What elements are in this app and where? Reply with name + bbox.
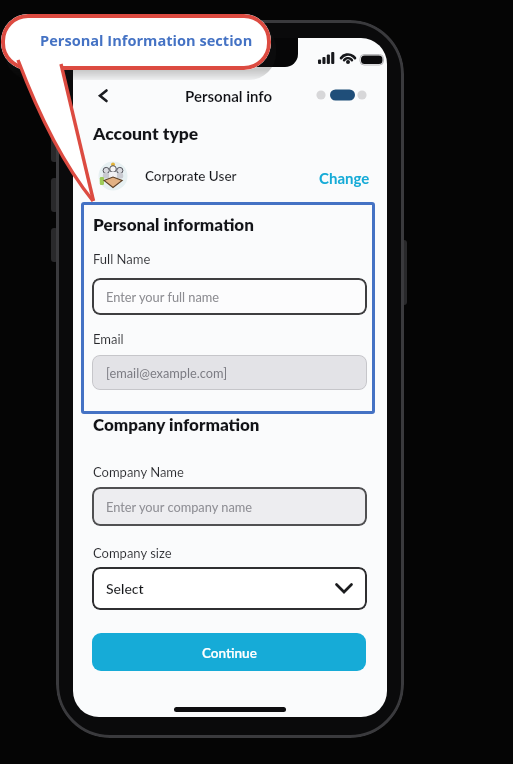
staticText: Email bbox=[93, 331, 124, 347]
staticText: Corporate User bbox=[145, 168, 237, 184]
staticText: Change bbox=[319, 169, 370, 187]
button[interactable]: [email@example.com] bbox=[92, 355, 367, 390]
staticText: [email@example.com] bbox=[106, 365, 228, 380]
staticText: Account type bbox=[93, 123, 199, 144]
button[interactable]: Enter your company name bbox=[92, 487, 367, 526]
button[interactable] bbox=[89, 81, 119, 111]
staticText: Company information bbox=[93, 414, 260, 434]
staticText: Enter your company name bbox=[106, 499, 253, 514]
staticText: Company Name bbox=[93, 464, 184, 480]
button[interactable]: Select bbox=[92, 567, 367, 610]
staticText: Select bbox=[106, 580, 144, 597]
button[interactable]: Continue bbox=[92, 633, 366, 671]
staticText: Continue bbox=[202, 645, 257, 661]
staticText: Enter your full name bbox=[106, 289, 220, 304]
button[interactable]: Enter your full name bbox=[92, 278, 367, 315]
staticText: Personal information bbox=[93, 214, 254, 234]
staticText: Full Name bbox=[93, 251, 151, 267]
staticText: Personal Information section bbox=[40, 30, 253, 50]
staticText: Company size bbox=[93, 545, 172, 561]
button[interactable]: Change bbox=[319, 169, 370, 187]
button[interactable]: Personal Information section bbox=[1, 14, 271, 70]
staticText: Personal info bbox=[185, 87, 273, 105]
